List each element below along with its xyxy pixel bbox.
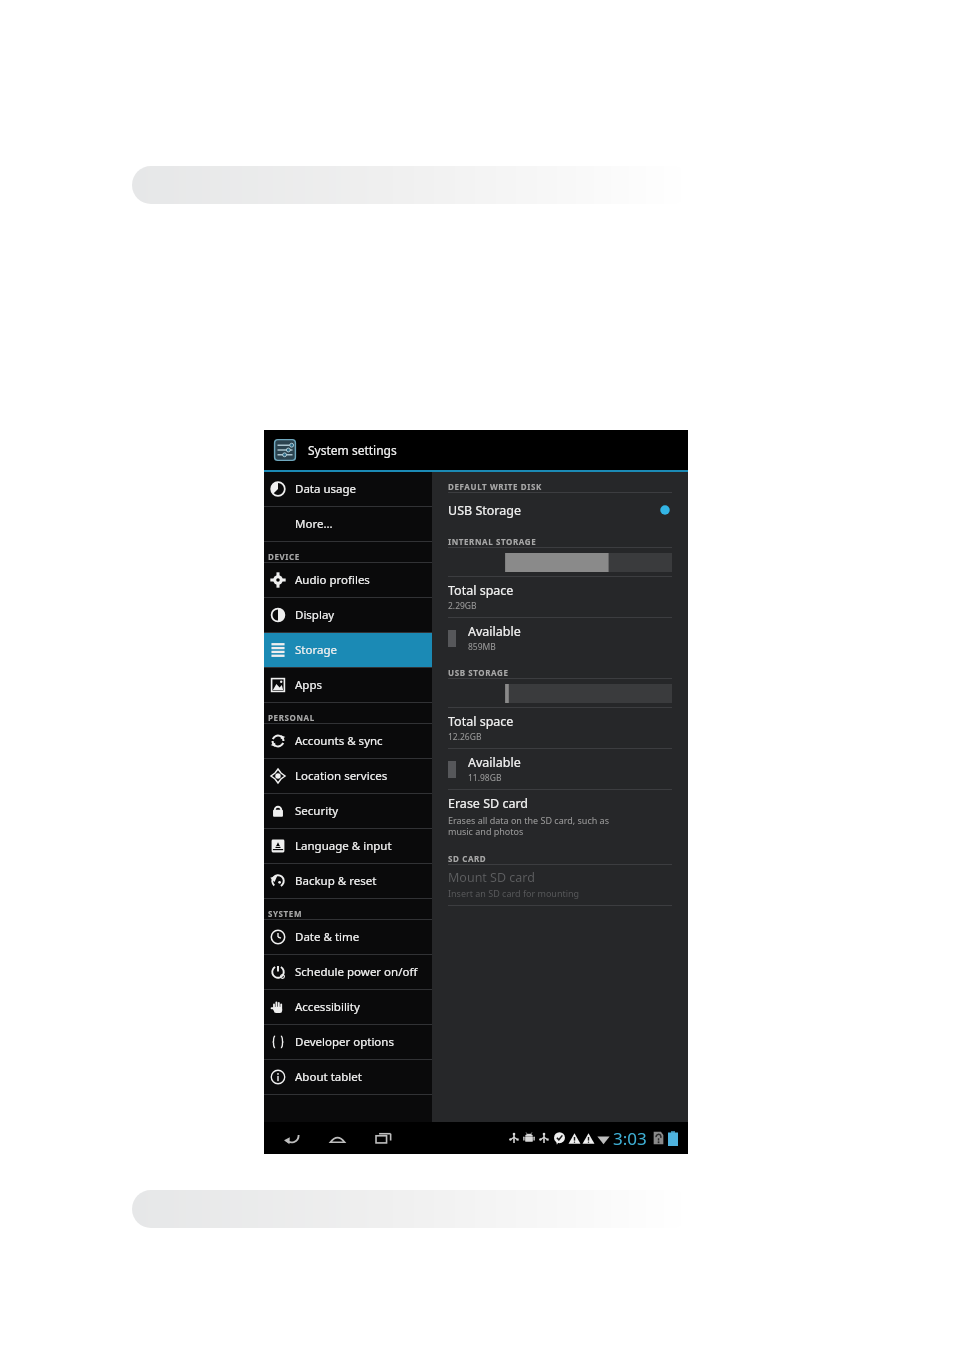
staticText: About tablet bbox=[295, 1069, 362, 1085]
staticText: Storage bbox=[295, 642, 337, 658]
button[interactable]: Erase SD card bbox=[448, 790, 672, 844]
staticText: 11.98GB bbox=[468, 772, 502, 784]
button[interactable]: Schedule power on/off bbox=[264, 955, 432, 989]
staticText: PERSONAL bbox=[268, 712, 315, 723]
staticText: 2.29GB bbox=[448, 600, 477, 612]
staticText: Available bbox=[468, 623, 521, 640]
button[interactable]: Storage bbox=[264, 633, 432, 667]
staticText: Language & input bbox=[295, 838, 392, 854]
button[interactable]: Total space bbox=[448, 708, 672, 748]
button[interactable]: Developer options bbox=[264, 1025, 432, 1059]
staticText: Erase SD card bbox=[448, 795, 529, 812]
button[interactable]: About tablet bbox=[264, 1060, 432, 1094]
staticText: Erases all data on the SD card, such as … bbox=[448, 814, 609, 838]
staticText: Total space bbox=[448, 713, 514, 730]
staticText: 12.26GB bbox=[448, 731, 482, 743]
staticText: 859MB bbox=[468, 641, 496, 653]
staticText: Insert an SD card for mounting bbox=[448, 887, 580, 899]
staticText: Date & time bbox=[295, 929, 360, 945]
staticText: More... bbox=[295, 516, 333, 532]
staticText: Developer options bbox=[295, 1034, 394, 1050]
staticText: Available bbox=[468, 754, 521, 771]
button[interactable]: Location services bbox=[264, 759, 432, 793]
staticText: DEVICE bbox=[268, 551, 300, 562]
staticText: Security bbox=[295, 803, 339, 819]
button[interactable]: Date & time bbox=[264, 920, 432, 954]
staticText: Mount SD card bbox=[448, 869, 535, 886]
staticText: 3:03 bbox=[613, 1127, 647, 1150]
staticText: SD CARD bbox=[448, 853, 487, 864]
staticText: DEFAULT WRITE DISK bbox=[448, 481, 542, 492]
staticText: Total space bbox=[448, 582, 514, 599]
button[interactable]: Available bbox=[448, 618, 672, 658]
staticText: SYSTEM bbox=[268, 908, 303, 919]
staticText: Audio profiles bbox=[295, 572, 370, 588]
staticText: Accessibility bbox=[295, 999, 360, 1015]
staticText: Apps bbox=[295, 677, 323, 693]
staticText: Data usage bbox=[295, 481, 357, 497]
staticText: INTERNAL STORAGE bbox=[448, 536, 537, 547]
button[interactable]: Display bbox=[264, 598, 432, 632]
staticText: Backup & reset bbox=[295, 873, 377, 889]
button[interactable]: Total space bbox=[448, 577, 672, 617]
button[interactable]: More... bbox=[264, 507, 432, 541]
button[interactable]: Accounts & sync bbox=[264, 724, 432, 758]
button[interactable]: USB Storage bbox=[448, 493, 672, 527]
button[interactable]: Security bbox=[264, 794, 432, 828]
button[interactable]: Language & input bbox=[264, 829, 432, 863]
button[interactable]: Recent apps bbox=[370, 1125, 396, 1151]
staticText: System settings bbox=[308, 442, 397, 458]
button[interactable]: Home bbox=[324, 1125, 350, 1151]
staticText: USB STORAGE bbox=[448, 667, 509, 678]
button[interactable]: Accessibility bbox=[264, 990, 432, 1024]
staticText: Display bbox=[295, 607, 335, 623]
staticText: Schedule power on/off bbox=[295, 964, 418, 980]
button[interactable]: Apps bbox=[264, 668, 432, 702]
button[interactable]: Data usage bbox=[264, 472, 432, 506]
button[interactable]: Available bbox=[448, 749, 672, 789]
button[interactable]: Back bbox=[278, 1125, 304, 1151]
staticText: Location services bbox=[295, 768, 388, 784]
button[interactable]: Audio profiles bbox=[264, 563, 432, 597]
staticText: USB Storage bbox=[448, 502, 658, 519]
button[interactable]: Backup & reset bbox=[264, 864, 432, 898]
staticText: Accounts & sync bbox=[295, 733, 383, 749]
